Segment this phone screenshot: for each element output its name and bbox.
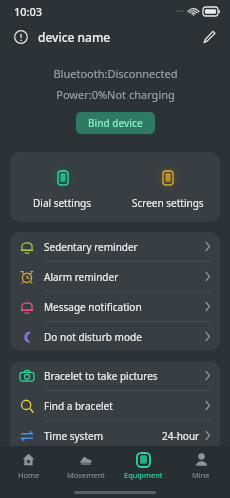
button[interactable]: Alarm reminder <box>10 262 220 291</box>
button[interactable]: Bind device <box>76 112 155 134</box>
staticText: Bind device <box>88 116 143 130</box>
staticText: Bracelet to take pictures <box>44 369 158 383</box>
staticText: Sedentary reminder <box>44 240 138 254</box>
staticText: Screen settings <box>132 196 204 210</box>
staticText: Find a bracelet <box>44 399 113 413</box>
button[interactable]: Dial settings <box>10 164 115 210</box>
staticText: ••• <box>176 7 184 17</box>
button[interactable]: Movement <box>57 446 114 486</box>
button[interactable]: Edit device name <box>196 24 222 50</box>
staticText: 24-hour <box>162 429 200 443</box>
staticText: Equipment <box>124 470 163 480</box>
staticText: 5s <box>189 459 200 473</box>
staticText: Movement <box>67 470 105 480</box>
staticText: Message notification <box>44 300 142 314</box>
button[interactable]: Sedentary reminder <box>10 232 220 261</box>
button[interactable]: Do not disturb mode <box>10 322 220 351</box>
staticText: Alarm reminder <box>44 270 119 284</box>
staticText: Bluetooth:Disconnected <box>53 66 178 81</box>
button[interactable]: Bracelet to take pictures <box>10 361 220 390</box>
button[interactable]: Mine <box>172 446 230 486</box>
staticText: device name <box>38 29 111 45</box>
staticText: 10:03 <box>14 4 43 19</box>
button[interactable]: Equipment <box>114 446 172 486</box>
staticText: Home <box>18 470 40 480</box>
staticText: Vibration duration <box>44 459 130 473</box>
button[interactable]: Screen settings <box>115 164 220 210</box>
button[interactable]: Vibration duration <box>10 451 220 480</box>
button[interactable]: Message notification <box>10 292 220 321</box>
staticText: Power:0%Not charging <box>56 87 175 102</box>
staticText: Do not disturb mode <box>44 330 142 344</box>
button[interactable]: Find a bracelet <box>10 391 220 420</box>
button[interactable]: Home <box>0 446 57 486</box>
button[interactable]: Device info <box>8 24 34 50</box>
staticText: Dial settings <box>33 196 92 210</box>
button[interactable]: Time system <box>10 421 220 450</box>
staticText: Mine <box>192 470 210 480</box>
staticText: Time system <box>44 429 104 443</box>
